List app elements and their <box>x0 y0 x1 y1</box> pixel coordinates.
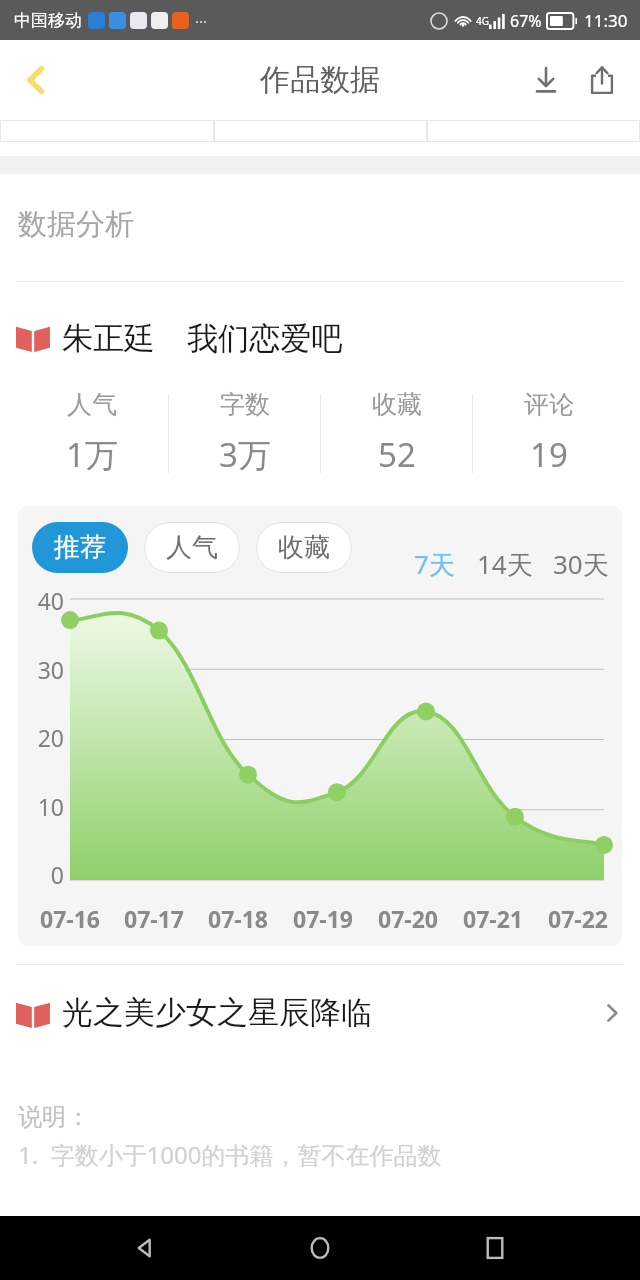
staticText: 14天 <box>477 546 533 582</box>
staticText: 光之美少女之星辰降临 <box>62 993 600 1032</box>
staticText: 评论 <box>524 389 574 420</box>
button[interactable]: Back <box>115 1218 175 1278</box>
staticText: 11:30 <box>584 9 628 32</box>
button[interactable]: 光之美少女之星辰降临 <box>0 987 640 1038</box>
staticText: 07-19 <box>293 903 353 934</box>
staticText: 3万 <box>219 432 271 477</box>
staticText: 说明： <box>18 1102 90 1132</box>
button[interactable]: Recents <box>465 1218 525 1278</box>
staticText: 30 <box>37 654 64 685</box>
button[interactable]: Download <box>520 54 572 106</box>
staticText: 人气 <box>67 389 117 420</box>
staticText: 7天 <box>414 546 455 582</box>
staticText: 30天 <box>553 546 609 582</box>
staticText: ··· <box>195 11 208 31</box>
staticText: 收藏 <box>278 531 330 564</box>
staticText: 07-18 <box>208 903 268 934</box>
staticText: 1. 字数小于1000的书籍，暂不在作品数 <box>18 1138 442 1171</box>
staticText: 40 <box>37 585 64 616</box>
button[interactable]: 朱正廷 我们恋爱吧 <box>0 310 640 364</box>
staticText: 朱正廷 我们恋爱吧 <box>62 316 624 358</box>
staticText: 0 <box>50 859 64 890</box>
staticText: 人气 <box>166 531 218 564</box>
staticText: 4G <box>476 14 489 28</box>
staticText: 07-21 <box>463 903 523 934</box>
button[interactable]: Home <box>290 1218 350 1278</box>
staticText: 07-22 <box>548 903 608 934</box>
staticText: 收藏 <box>372 389 422 420</box>
button[interactable]: Share <box>576 54 628 106</box>
staticText: 字数 <box>220 389 270 420</box>
staticText: 52 <box>378 432 416 477</box>
button[interactable]: Back <box>8 52 64 108</box>
staticText: 数据分析 <box>18 206 134 243</box>
staticText: 19 <box>530 432 568 477</box>
button[interactable]: 14天 <box>473 542 537 586</box>
staticText: 作品数据 <box>260 61 380 99</box>
button[interactable]: 收藏 <box>256 522 352 573</box>
staticText: 67% <box>510 10 542 32</box>
button[interactable]: 7天 <box>410 542 459 586</box>
button[interactable]: 推荐 <box>32 522 128 573</box>
staticText: 中国移动 <box>14 10 82 31</box>
staticText: 20 <box>37 722 64 753</box>
staticText: 07-16 <box>40 903 100 934</box>
button[interactable]: 30天 <box>549 542 613 586</box>
button[interactable]: 人气 <box>144 522 240 573</box>
staticText: 1万 <box>66 432 118 477</box>
staticText: 10 <box>37 791 64 822</box>
staticText: 07-20 <box>378 903 438 934</box>
staticText: 推荐 <box>54 531 106 564</box>
staticText: 07-17 <box>124 903 184 934</box>
